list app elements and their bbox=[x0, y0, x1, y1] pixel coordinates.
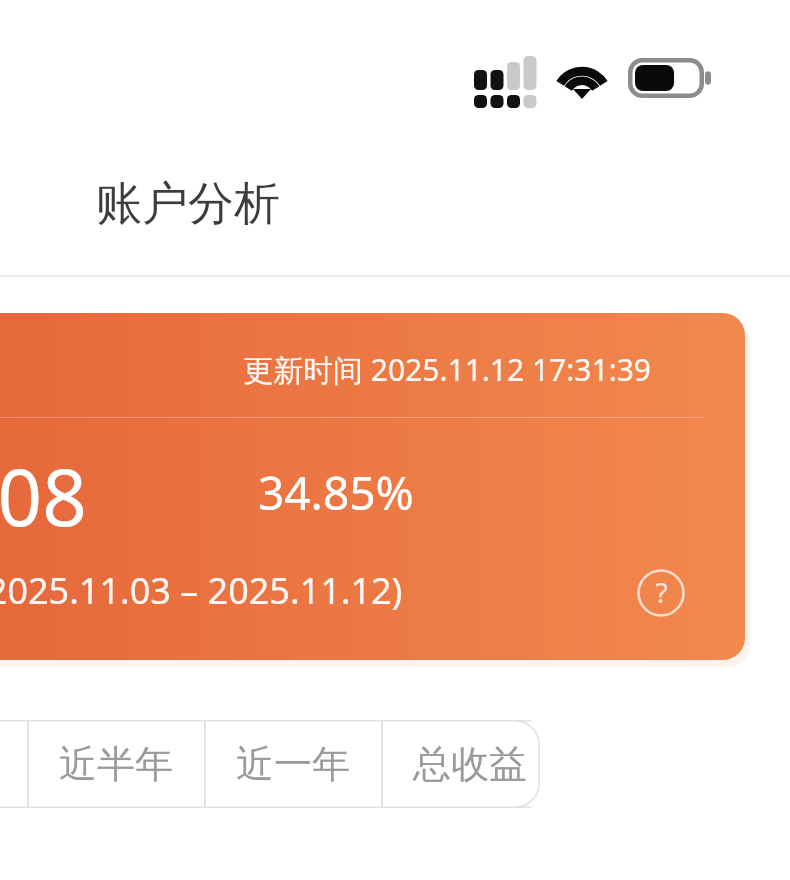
button[interactable]: 帮助 bbox=[637, 569, 685, 617]
staticText: 34.85% bbox=[258, 461, 414, 524]
staticText: 总收益 bbox=[413, 740, 527, 788]
button[interactable]: 近半年 bbox=[27, 720, 204, 808]
button[interactable]: 近一年 bbox=[204, 720, 381, 808]
staticText: ? bbox=[655, 573, 668, 611]
staticText: 更新时间 2025.11.12 17:31:39 bbox=[243, 349, 651, 390]
button[interactable]: 总收益 bbox=[381, 720, 540, 808]
staticText: 1.08 bbox=[0, 443, 87, 549]
staticText: 账户分析 bbox=[96, 175, 280, 233]
staticText: (2025.11.03 – 2025.11.12) bbox=[0, 566, 403, 615]
staticText: 近半年 bbox=[59, 740, 173, 788]
staticText: 近一年 bbox=[236, 740, 350, 788]
button[interactable]: 更新时间 2025.11.12 17:31:39 bbox=[0, 313, 745, 660]
